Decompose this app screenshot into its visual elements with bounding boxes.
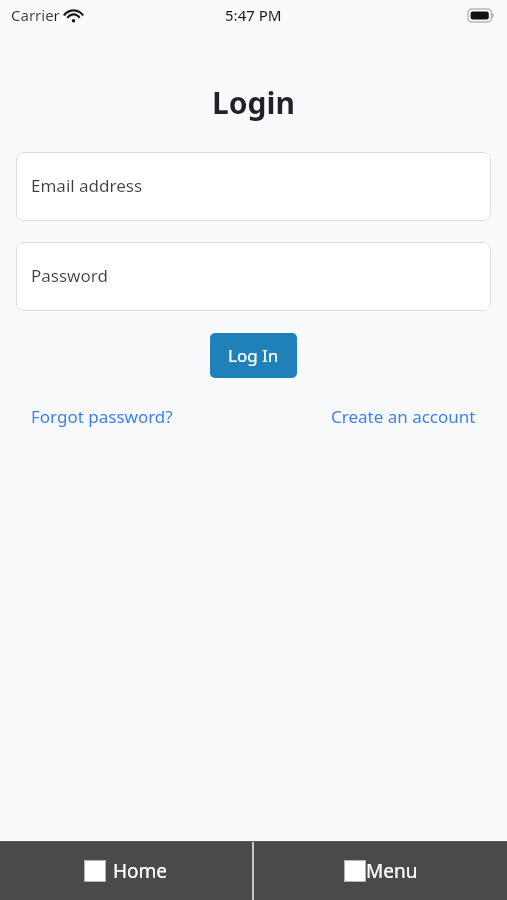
button[interactable]: Password <box>16 242 491 311</box>
staticText: Password <box>31 264 108 287</box>
button[interactable]: Email address <box>16 152 491 221</box>
staticText: Home <box>113 858 168 884</box>
staticText: Log In <box>228 344 279 367</box>
staticText: Carrier <box>11 5 60 25</box>
staticText: Create an account <box>331 405 476 428</box>
staticText: Login <box>0 82 507 123</box>
staticText: Email address <box>31 174 143 197</box>
button[interactable]: Log In <box>210 333 297 378</box>
button[interactable]: Menu <box>254 842 507 900</box>
staticText: Menu <box>366 858 418 884</box>
button[interactable]: Forgot password? <box>19 399 185 434</box>
button[interactable]: Create an account <box>319 399 488 434</box>
button[interactable]: Home <box>0 842 252 900</box>
staticText: Forgot password? <box>31 405 173 428</box>
staticText: 5:47 PM <box>225 5 282 25</box>
